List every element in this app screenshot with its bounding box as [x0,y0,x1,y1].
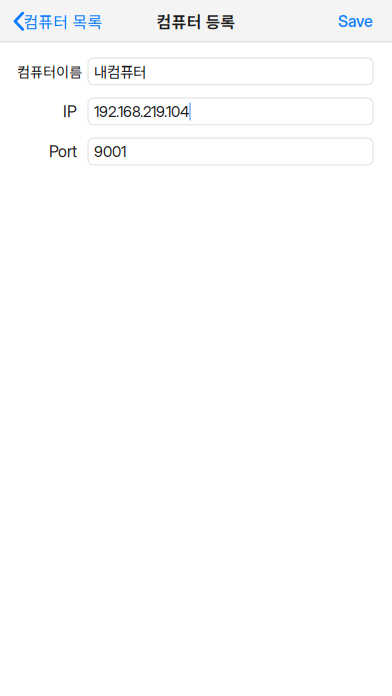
staticText: Save [338,12,373,31]
button[interactable]: 컴퓨터 목록 [0,2,102,41]
staticText: Port [49,142,77,161]
staticText: 컴퓨터 등록 [156,10,235,33]
staticText: IP [63,102,77,121]
staticText: 192.168.219.104 [94,102,189,120]
staticText: 9001 [94,142,126,161]
button[interactable]: Save [338,4,392,39]
staticText: 컴퓨터이름 [17,61,82,82]
staticText: 내컴퓨터 [94,61,146,82]
staticText: 컴퓨터 목록 [23,10,102,33]
